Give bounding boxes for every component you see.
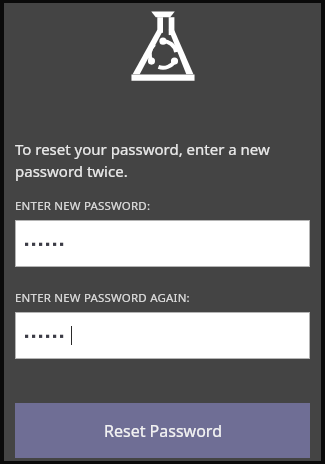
staticText: Reset Password xyxy=(104,420,222,442)
staticText: ENTER NEW PASSWORD AGAIN: xyxy=(15,290,190,306)
button[interactable]: Password input xyxy=(15,220,310,267)
button[interactable]: Reset Password xyxy=(15,403,310,458)
staticText: ENTER NEW PASSWORD: xyxy=(15,198,151,214)
button[interactable]: Password input xyxy=(15,312,310,359)
staticText: To reset your password, enter a new pass… xyxy=(15,139,310,182)
